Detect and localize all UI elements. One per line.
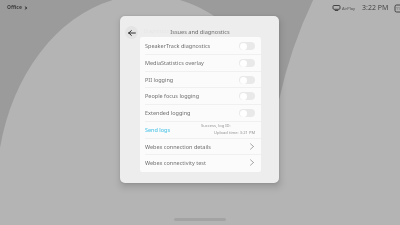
button[interactable]: PII logging [140, 71, 261, 88]
staticText: Success, log ID: [201, 123, 231, 129]
staticText: Extended logging [145, 109, 191, 116]
staticText: MediaStatistics overlay [145, 59, 204, 66]
staticText: AirPlay [342, 6, 355, 11]
staticText: Office [7, 4, 22, 11]
button[interactable]: Webex connection details [140, 138, 261, 155]
staticText: People focus logging [145, 92, 200, 99]
button[interactable]: MediaStatistics overlay [140, 54, 261, 71]
staticText: Send logs [145, 126, 171, 133]
button[interactable]: Webex connectivity test [140, 154, 261, 171]
staticText: PII logging [145, 76, 174, 83]
staticText: Upload time: 3:21 PM [214, 130, 256, 136]
staticText: 11 [396, 6, 400, 11]
staticText: SpeakerTrack diagnostics [145, 42, 211, 49]
staticText: Webex connectivity test [145, 159, 206, 166]
button[interactable]: Back [125, 26, 138, 39]
staticText: Issues and diagnostics [170, 28, 230, 36]
button[interactable]: People focus logging [140, 87, 261, 104]
staticText: Webex connection details [145, 143, 211, 150]
staticText: 3:22 PM [362, 3, 389, 13]
button[interactable]: SpeakerTrack diagnostics [140, 37, 261, 54]
button[interactable]: Send logs [140, 121, 261, 138]
button[interactable]: Extended logging [140, 104, 261, 121]
